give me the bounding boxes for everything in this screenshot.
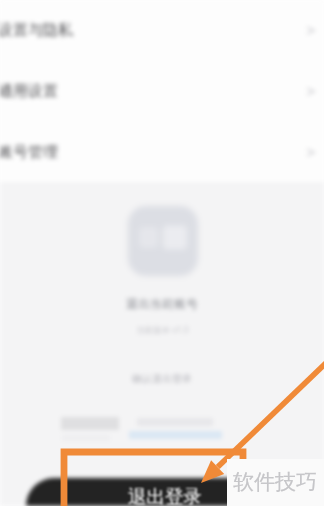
button[interactable]: 设置与隐私 <box>0 0 324 61</box>
staticText: 退出登录 <box>128 485 202 506</box>
button[interactable]: 账号管理 <box>0 122 324 183</box>
staticText: 当前版本 v1.0 <box>136 324 189 336</box>
staticText: 设置与隐私 <box>0 21 73 40</box>
staticText: 软件技巧 <box>233 469 317 495</box>
staticText: 通用设置 <box>0 82 58 101</box>
button[interactable]: 通用设置 <box>0 61 324 122</box>
staticText: 账号管理 <box>0 143 58 162</box>
staticText: 退出当前账号 <box>126 296 198 311</box>
button[interactable] <box>26 478 300 506</box>
staticText: 确认退出登录 <box>132 372 192 385</box>
